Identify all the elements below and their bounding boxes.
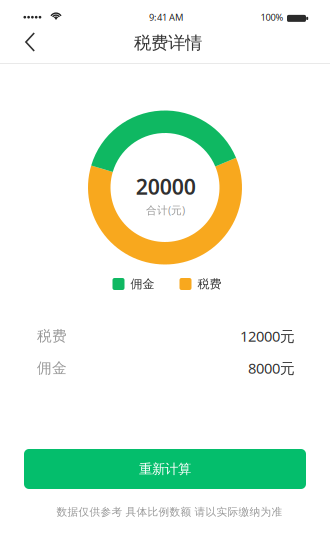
staticText: 佣金 bbox=[130, 277, 154, 291]
staticText: 9:41 AM bbox=[149, 11, 183, 23]
staticText: 20000 bbox=[136, 172, 196, 201]
staticText: 税费 bbox=[197, 277, 221, 291]
staticText: 8000元 bbox=[248, 358, 295, 378]
staticText: 合计(元) bbox=[146, 203, 185, 217]
staticText: 12000元 bbox=[240, 326, 295, 346]
staticText: 数据仅供参考 具体比例数额 请以实际缴纳为准 bbox=[56, 505, 282, 518]
staticText: 100% bbox=[260, 11, 283, 23]
staticText: 税费详情 bbox=[134, 32, 202, 54]
staticText: 重新计算 bbox=[139, 461, 191, 477]
staticText: 税费 bbox=[37, 327, 67, 345]
button[interactable]: Back bbox=[0, 0, 44, 44]
button[interactable]: 重新计算 bbox=[24, 449, 306, 489]
staticText: 佣金 bbox=[37, 359, 67, 377]
